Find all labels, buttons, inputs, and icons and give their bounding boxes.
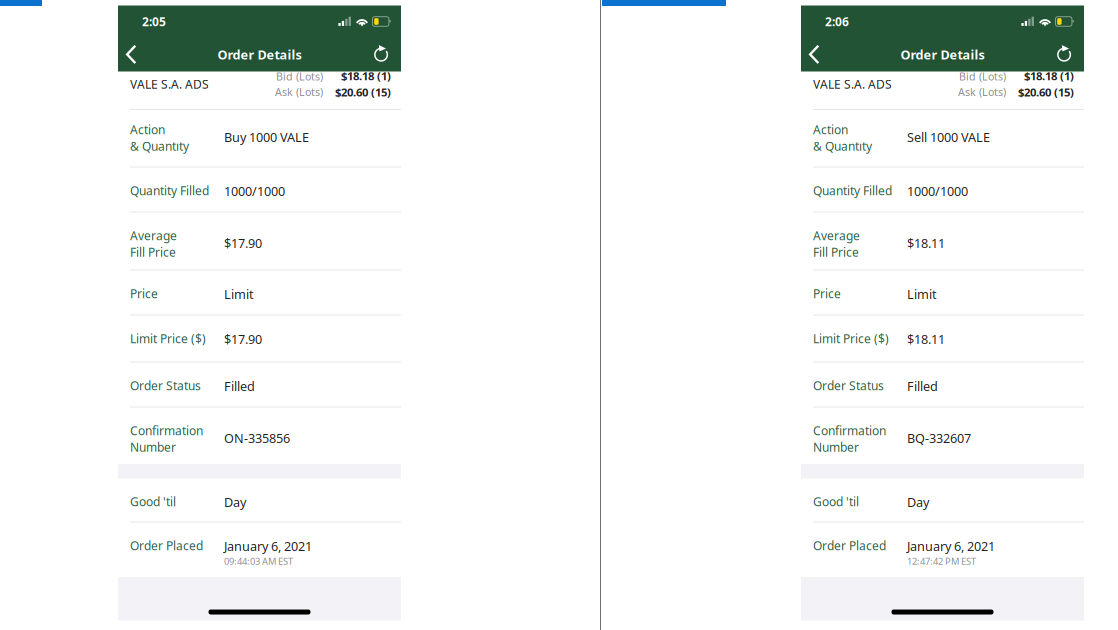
staticText: 09:44:03 AM EST bbox=[224, 555, 293, 567]
staticText: 2:06 bbox=[825, 13, 849, 30]
staticText: Order Status bbox=[813, 377, 884, 394]
staticText: ON-335856 bbox=[224, 429, 290, 447]
staticText: VALE S.A. ADS bbox=[130, 76, 209, 92]
staticText: 2:05 bbox=[142, 13, 166, 30]
staticText: $18.18 (1) bbox=[341, 68, 391, 83]
staticText: & Quantity bbox=[130, 138, 189, 154]
staticText: Price bbox=[813, 285, 841, 302]
staticText: Action bbox=[130, 121, 165, 138]
button[interactable]: Price bbox=[801, 270, 1084, 315]
staticText: $18.18 (1) bbox=[1024, 68, 1074, 83]
button[interactable]: Good 'til bbox=[118, 478, 401, 522]
button[interactable]: Action bbox=[118, 106, 401, 167]
button[interactable]: Quantity Filled bbox=[118, 167, 401, 212]
staticText: Limit Price ($) bbox=[130, 330, 206, 347]
button[interactable]: Action bbox=[801, 106, 1084, 167]
staticText: Average bbox=[130, 227, 177, 244]
staticText: $17.90 bbox=[224, 234, 262, 252]
button[interactable]: Average bbox=[801, 212, 1084, 270]
staticText: Fill Price bbox=[130, 244, 176, 260]
button[interactable]: Confirmation bbox=[801, 407, 1084, 465]
button[interactable]: Order Placed bbox=[801, 522, 1084, 578]
staticText: Filled bbox=[907, 377, 938, 395]
staticText: Fill Price bbox=[813, 244, 859, 260]
button[interactable]: Limit Price ($) bbox=[118, 315, 401, 362]
staticText: Quantity Filled bbox=[130, 182, 209, 199]
button[interactable]: Average bbox=[118, 212, 401, 270]
staticText: Ask (Lots) bbox=[275, 84, 323, 99]
staticText: Number bbox=[813, 439, 859, 455]
staticText: 1000/1000 bbox=[224, 182, 285, 200]
staticText: Order Details bbox=[900, 46, 984, 63]
button[interactable]: Price bbox=[118, 270, 401, 315]
staticText: Limit bbox=[907, 285, 937, 303]
button[interactable]: Order Status bbox=[801, 362, 1084, 407]
button[interactable]: Confirmation bbox=[118, 407, 401, 465]
staticText: Filled bbox=[224, 377, 255, 395]
staticText: $20.60 (15) bbox=[1018, 84, 1074, 100]
staticText: BQ-332607 bbox=[907, 429, 971, 447]
staticText: Quantity Filled bbox=[813, 182, 892, 199]
staticText: Day bbox=[224, 493, 246, 511]
button[interactable]: Order Status bbox=[118, 362, 401, 407]
staticText: 12:47:42 PM EST bbox=[907, 555, 976, 567]
staticText: VALE S.A. ADS bbox=[813, 76, 892, 92]
staticText: Order Details bbox=[217, 46, 301, 63]
staticText: Limit Price ($) bbox=[813, 330, 889, 347]
button[interactable]: Back bbox=[801, 37, 827, 71]
staticText: Price bbox=[130, 285, 158, 302]
staticText: January 6, 2021 bbox=[224, 537, 312, 555]
staticText: Ask (Lots) bbox=[958, 84, 1006, 99]
button[interactable]: Order Placed bbox=[118, 522, 401, 578]
staticText: January 6, 2021 bbox=[907, 537, 995, 555]
staticText: Order Placed bbox=[130, 537, 203, 554]
staticText: Bid (Lots) bbox=[276, 69, 323, 83]
staticText: $18.11 bbox=[907, 330, 945, 348]
staticText: Good 'til bbox=[130, 493, 176, 510]
button[interactable]: Refresh bbox=[1048, 37, 1080, 71]
staticText: $20.60 (15) bbox=[335, 84, 391, 100]
staticText: Confirmation bbox=[130, 422, 203, 439]
button[interactable]: Quantity Filled bbox=[801, 167, 1084, 212]
staticText: Action bbox=[813, 121, 848, 138]
staticText: Limit bbox=[224, 285, 254, 303]
staticText: $17.90 bbox=[224, 330, 262, 348]
staticText: Good 'til bbox=[813, 493, 859, 510]
button[interactable]: Refresh bbox=[365, 37, 397, 71]
staticText: Order Placed bbox=[813, 537, 886, 554]
staticText: $18.11 bbox=[907, 234, 945, 252]
button[interactable]: Back bbox=[118, 37, 144, 71]
staticText: 1000/1000 bbox=[907, 182, 968, 200]
staticText: Sell 1000 VALE bbox=[907, 128, 990, 146]
staticText: Buy 1000 VALE bbox=[224, 128, 309, 146]
staticText: Average bbox=[813, 227, 860, 244]
staticText: Day bbox=[907, 493, 929, 511]
button[interactable]: Good 'til bbox=[801, 478, 1084, 522]
staticText: & Quantity bbox=[813, 138, 872, 154]
staticText: Bid (Lots) bbox=[959, 69, 1006, 83]
staticText: Confirmation bbox=[813, 422, 886, 439]
staticText: Order Status bbox=[130, 377, 201, 394]
staticText: Number bbox=[130, 439, 176, 455]
button[interactable]: Limit Price ($) bbox=[801, 315, 1084, 362]
